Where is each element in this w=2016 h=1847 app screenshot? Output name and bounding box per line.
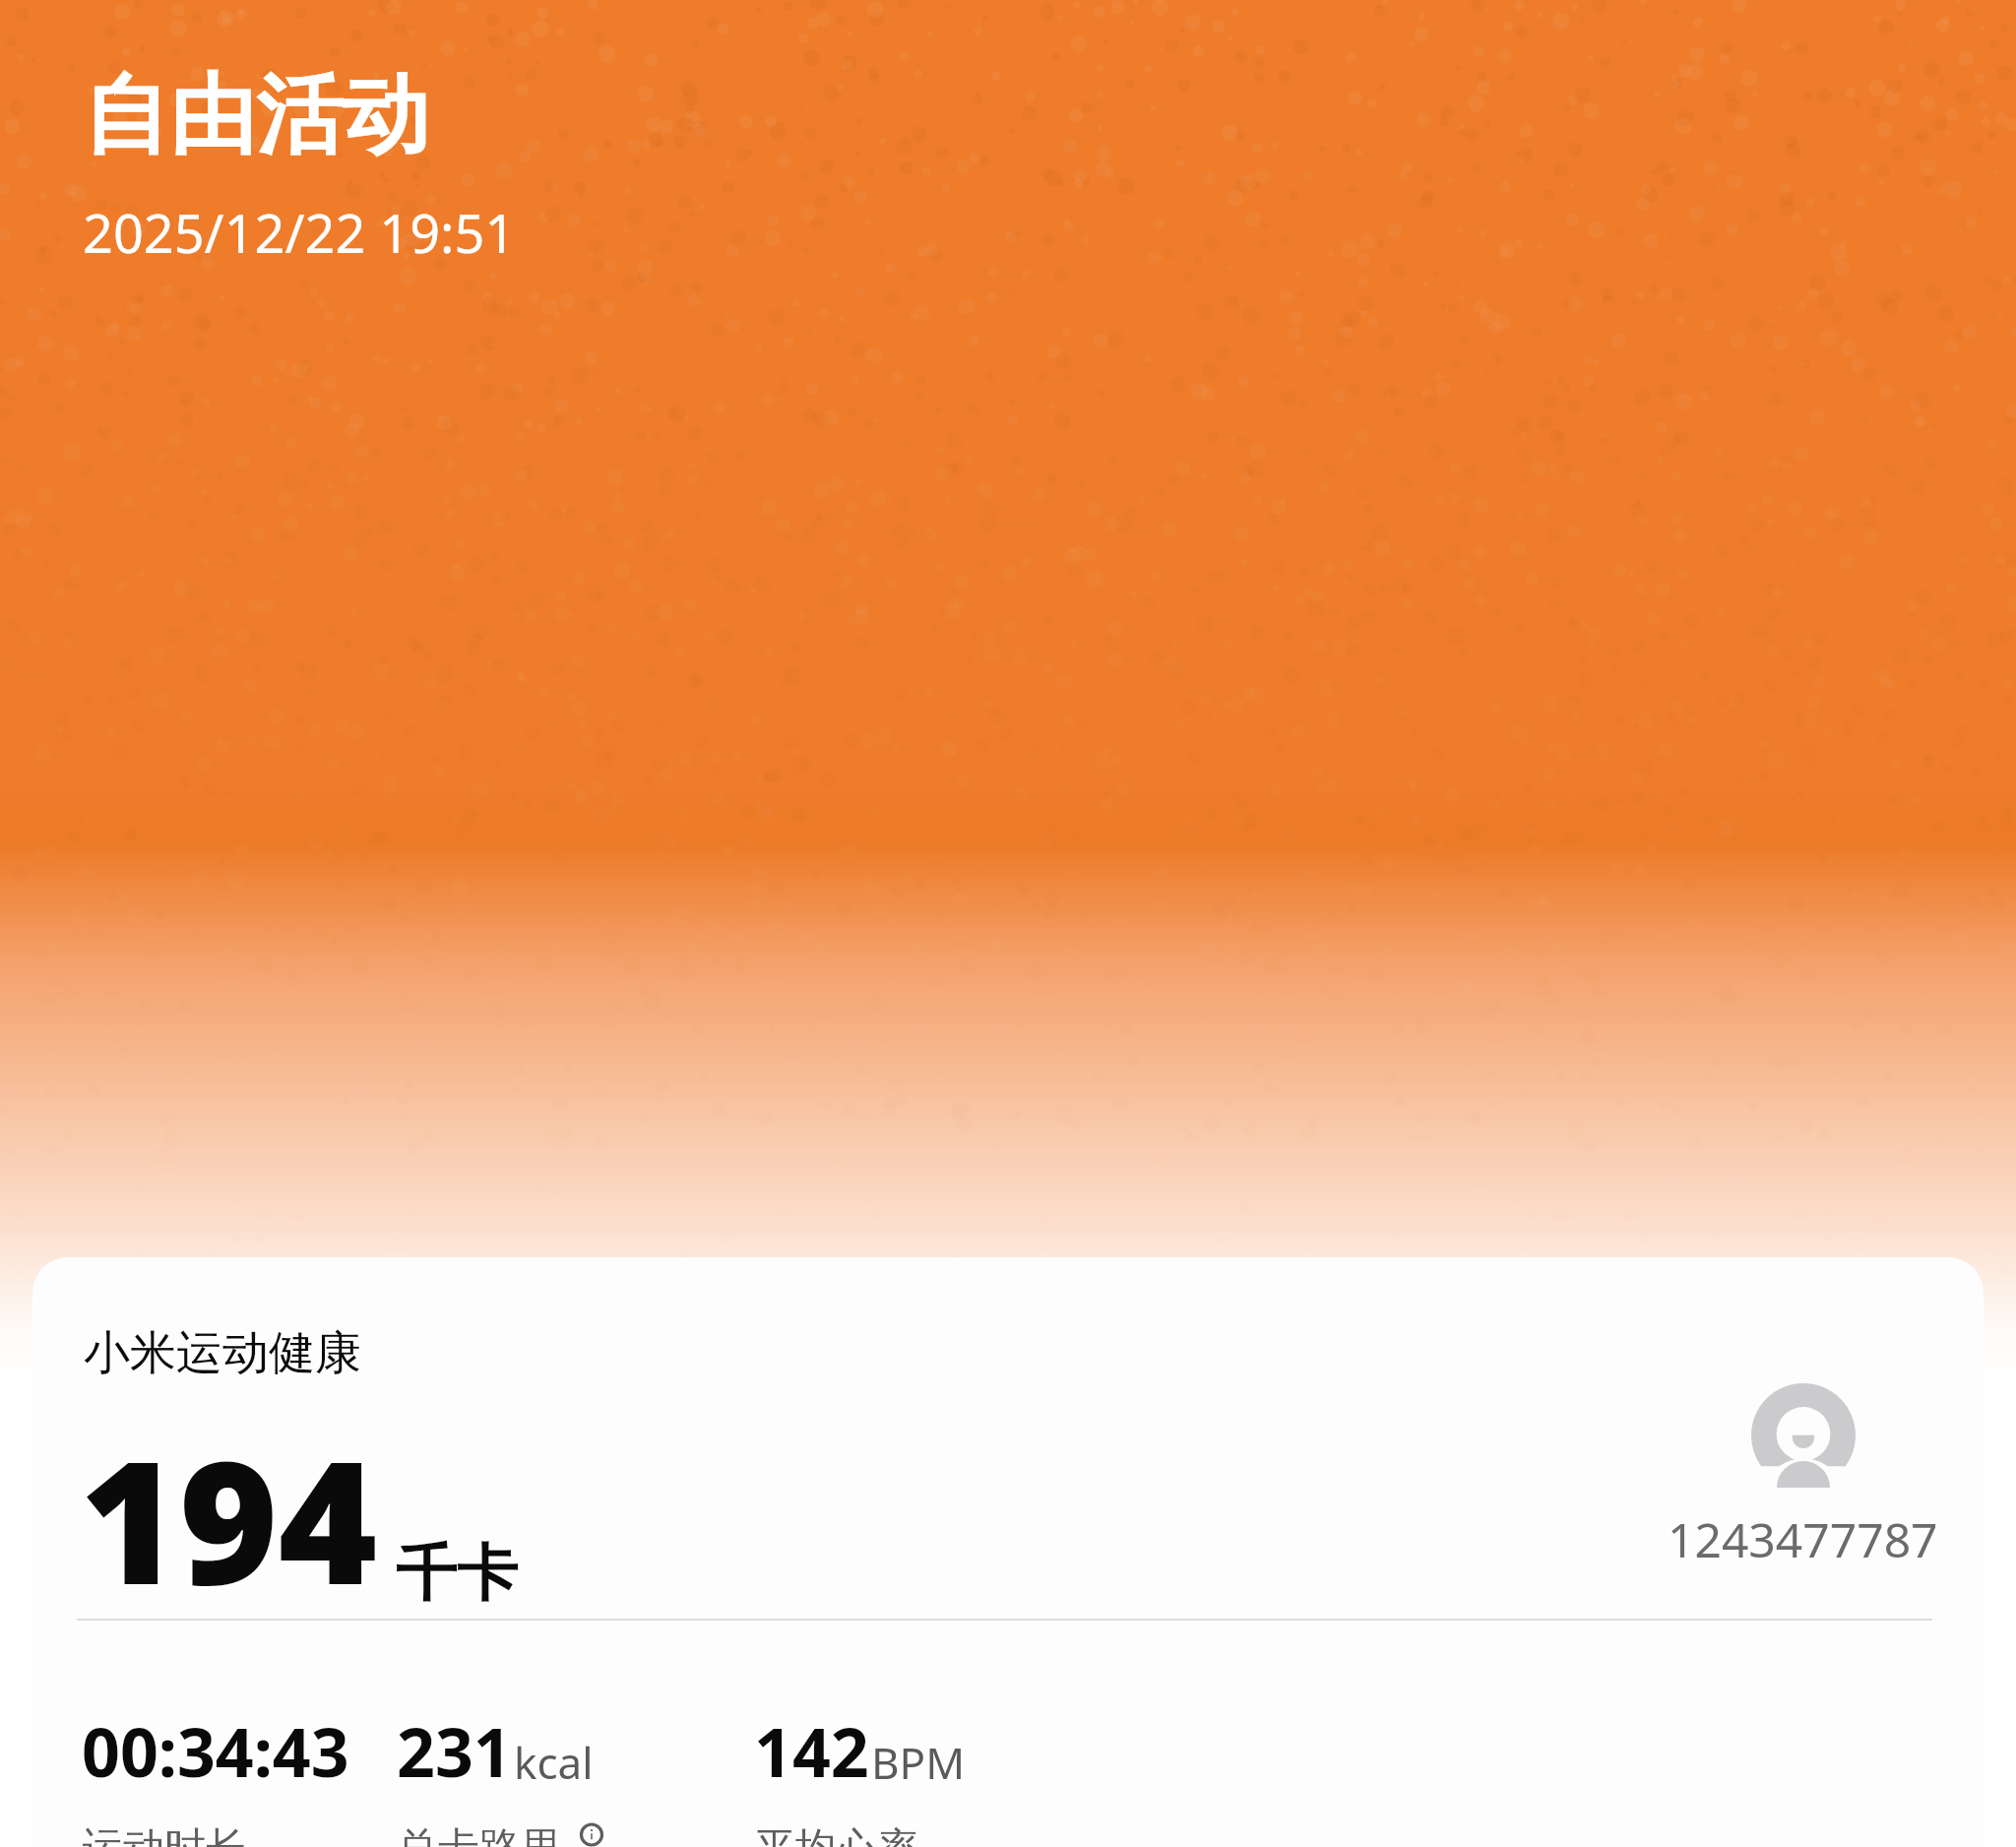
staticText: 小米运动健康 xyxy=(84,1324,361,1382)
button[interactable]: 小米运动健康 xyxy=(32,1257,1984,1847)
button[interactable]: User profile xyxy=(1668,1383,1938,1571)
staticText: 自由活动 xyxy=(83,61,429,170)
staticText: 231 xyxy=(397,1705,512,1797)
staticText: 00:34:43 xyxy=(82,1705,349,1797)
staticText: kcal xyxy=(514,1733,594,1792)
staticText: 总卡路里 xyxy=(397,1822,562,1847)
button[interactable]: 00:34:43 xyxy=(82,1705,397,1847)
staticText: 千卡 xyxy=(396,1535,518,1612)
staticText: 194 xyxy=(80,1403,378,1633)
staticText: 142 xyxy=(754,1705,869,1797)
staticText: 运动时长 xyxy=(82,1822,247,1847)
staticText: 2025/12/22 19:51 xyxy=(83,196,516,269)
button[interactable]: 142 xyxy=(754,1705,1984,1847)
button[interactable]: 231 xyxy=(397,1705,754,1847)
staticText: 1243477787 xyxy=(1668,1507,1938,1571)
staticText: 平均心率 xyxy=(754,1822,919,1847)
button[interactable]: Calorie info xyxy=(572,1822,611,1847)
staticText: BPM xyxy=(871,1733,966,1792)
